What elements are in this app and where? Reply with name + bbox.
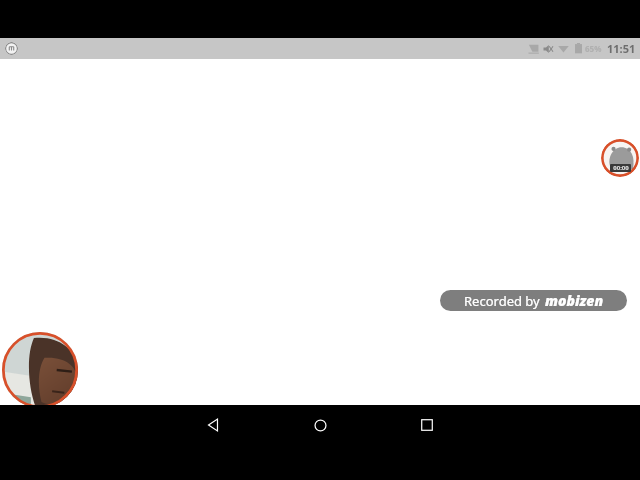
button[interactable]: Mobizen recorder controls [601,139,639,177]
button[interactable]: Mobizen recording [5,42,18,55]
staticText: Recorded by [464,292,540,310]
button[interactable]: Home [296,405,344,445]
staticText: 65% [585,43,602,54]
staticText: 00:00 [613,164,629,172]
staticText: mobizen [545,291,604,310]
button[interactable]: Recent apps [403,405,451,445]
button[interactable]: Front camera preview [2,332,78,408]
staticText: 11:51 [607,41,636,56]
button[interactable]: Back [189,405,237,445]
